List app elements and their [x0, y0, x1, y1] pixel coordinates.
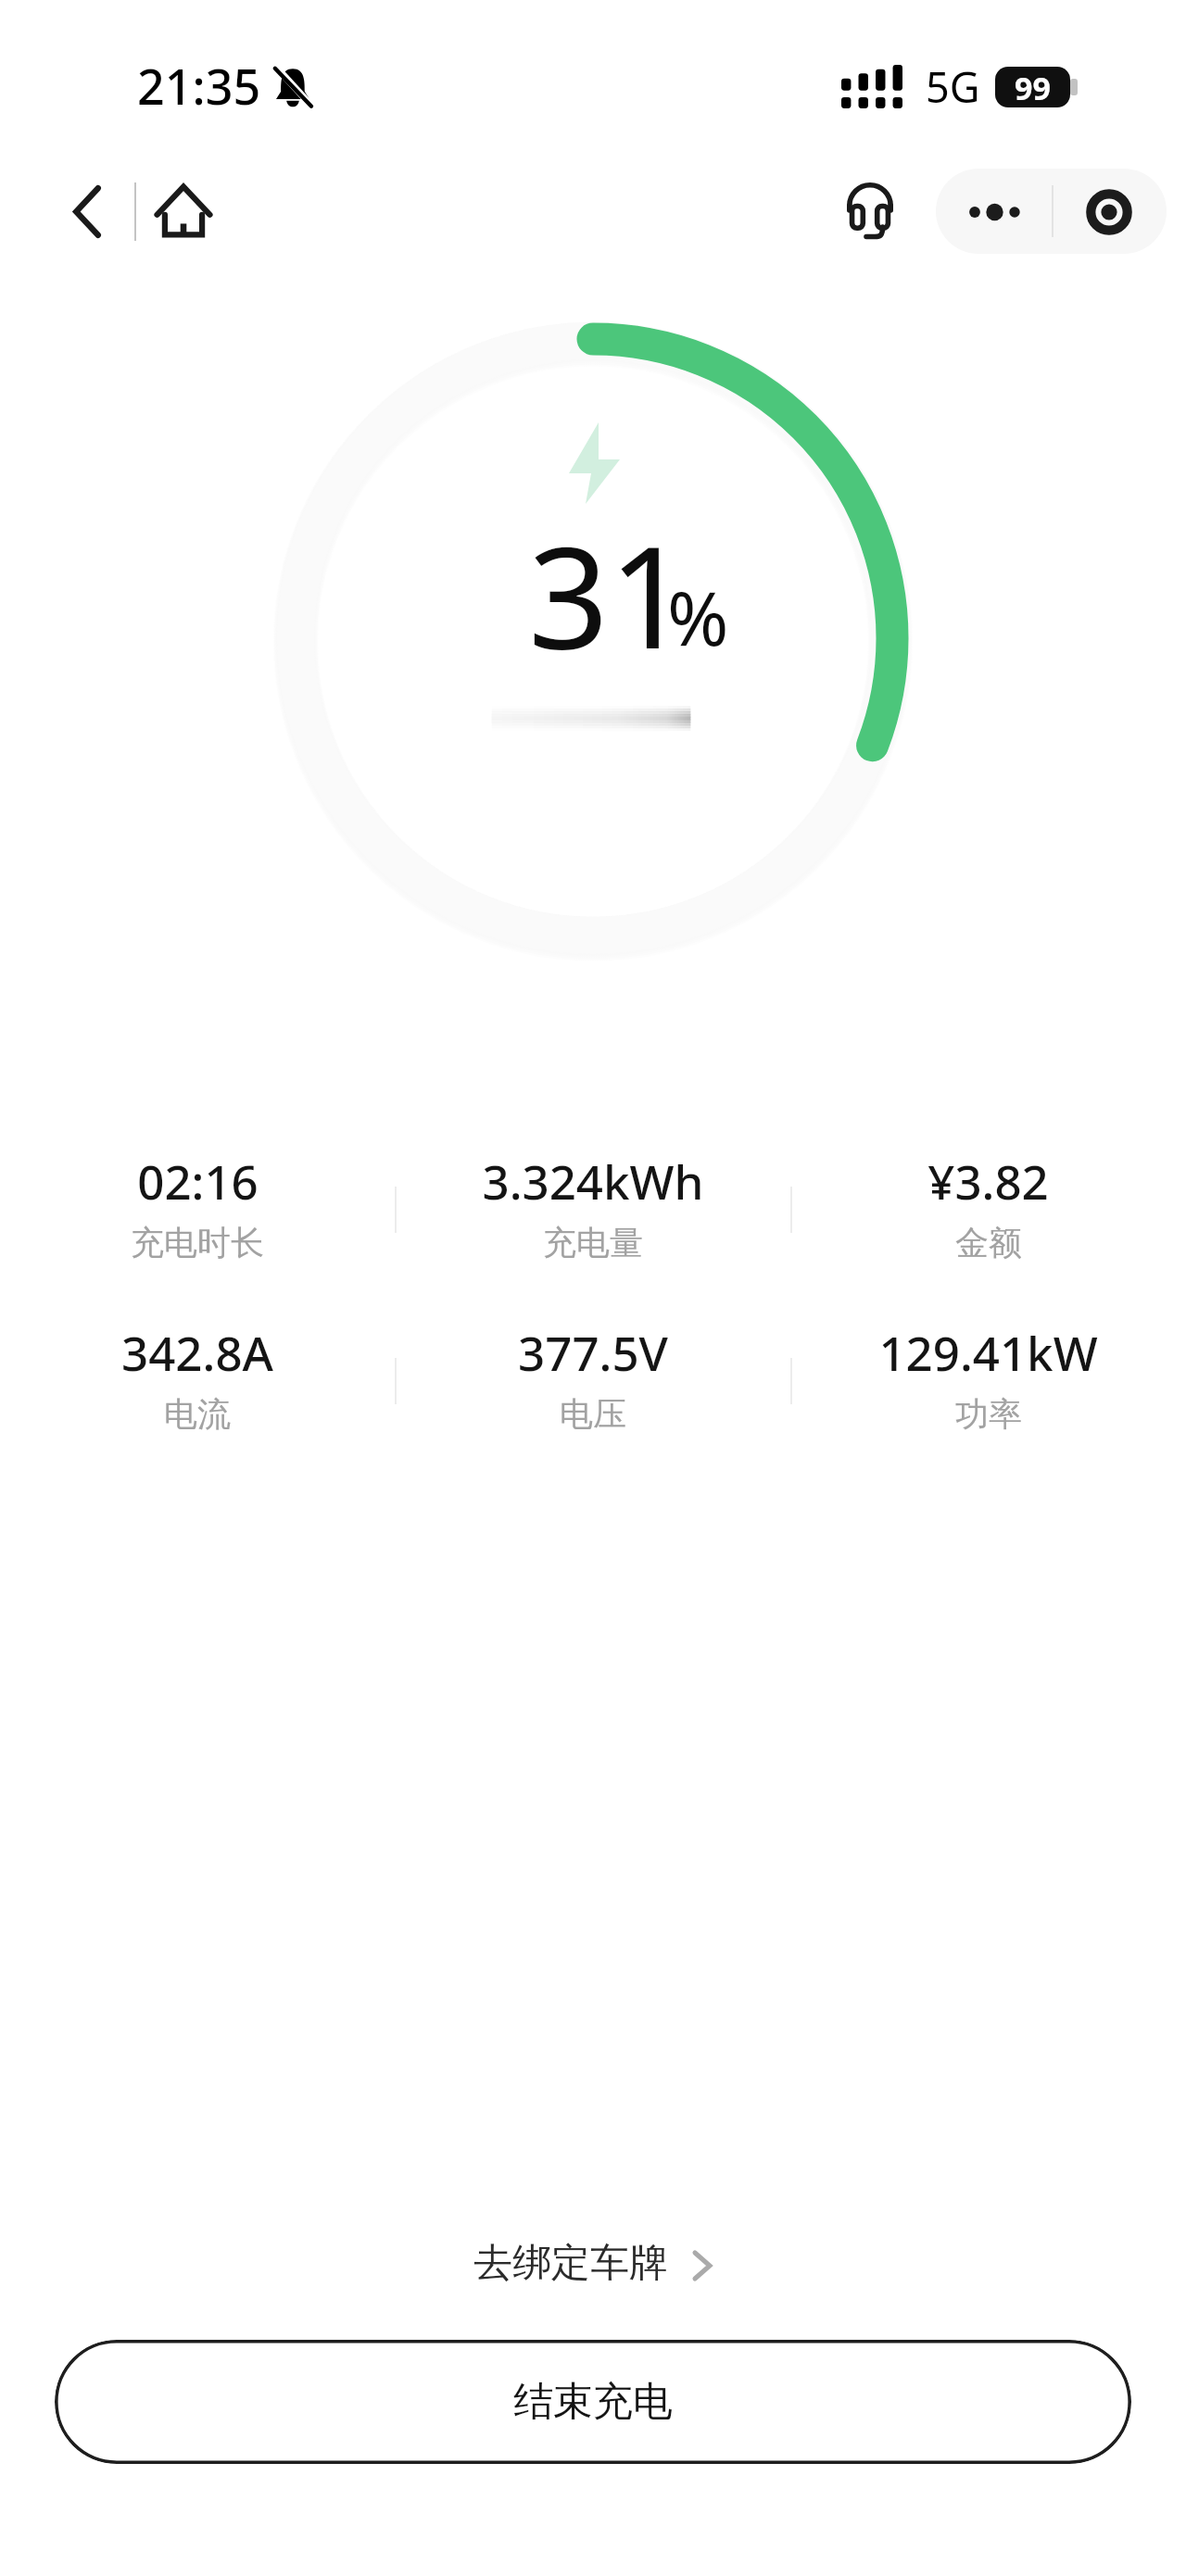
- staticText: 功率: [955, 1393, 1022, 1435]
- staticText: 377.5V: [518, 1320, 668, 1384]
- staticText: ¥3.82: [927, 1149, 1049, 1213]
- staticText: 3.324kWh: [482, 1149, 704, 1213]
- staticText: 结束充电: [513, 2377, 673, 2427]
- staticText: 充电时长: [131, 1222, 264, 1263]
- staticText: 去绑定车牌: [473, 2239, 668, 2288]
- staticText: 电流: [164, 1393, 231, 1435]
- button[interactable]: Customer service: [841, 182, 899, 239]
- button[interactable]: More options: [936, 169, 1052, 254]
- button[interactable]: 结束充电: [55, 2340, 1131, 2464]
- staticText: %: [667, 566, 729, 667]
- button[interactable]: Back: [54, 180, 119, 245]
- staticText: 31: [528, 498, 689, 690]
- staticText: 金额: [955, 1222, 1022, 1263]
- staticText: 21:35: [137, 53, 261, 119]
- staticText: 5G: [926, 58, 980, 115]
- button[interactable]: Home: [153, 180, 214, 241]
- button[interactable]: 去绑定车牌: [451, 2228, 735, 2299]
- staticText: 02:16: [137, 1149, 259, 1213]
- staticText: 99: [1015, 67, 1051, 107]
- staticText: 充电量: [543, 1222, 643, 1263]
- staticText: 电压: [560, 1393, 626, 1435]
- button[interactable]: Close: [1052, 169, 1167, 254]
- staticText: 129.41kW: [878, 1320, 1098, 1384]
- staticText: 342.8A: [121, 1320, 273, 1384]
